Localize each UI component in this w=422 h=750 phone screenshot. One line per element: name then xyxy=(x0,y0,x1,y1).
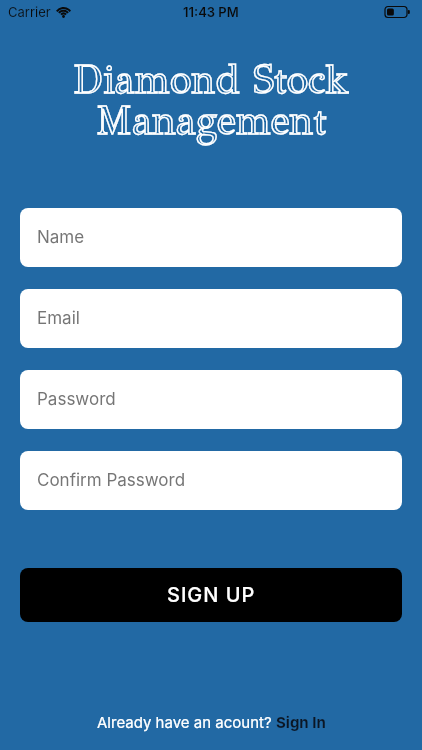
staticText: Management xyxy=(0,96,422,145)
staticText: Diamond Stock xyxy=(0,55,422,104)
staticText: Carrier xyxy=(8,4,51,20)
staticText: Password xyxy=(37,389,116,410)
button[interactable]: Confirm Password xyxy=(20,451,402,510)
button[interactable]: Email xyxy=(20,289,402,348)
staticText: Confirm Password xyxy=(37,470,186,491)
staticText: Sign In xyxy=(276,713,326,731)
staticText: Already have an acount? xyxy=(97,713,276,731)
button[interactable]: Password xyxy=(20,370,402,429)
button[interactable]: SIGN UP xyxy=(20,568,402,622)
button[interactable]: Name xyxy=(20,208,402,267)
staticText: SIGN UP xyxy=(167,583,256,607)
staticText: Name xyxy=(37,227,85,248)
button[interactable]: Already have an acount? xyxy=(97,713,326,731)
staticText: Email xyxy=(37,308,80,329)
staticText: 11:43 PM xyxy=(183,4,239,20)
